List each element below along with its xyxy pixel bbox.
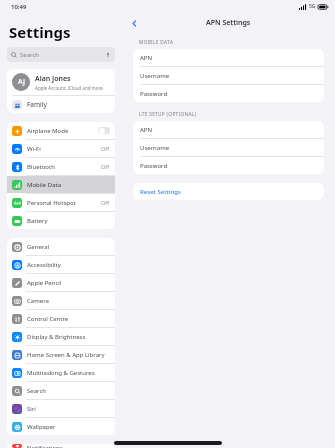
button[interactable]: Siri: [7, 400, 115, 417]
staticText: Siri: [27, 405, 36, 413]
button[interactable]: Airplane Mode: [7, 122, 115, 139]
staticText: Password: [140, 162, 168, 170]
button[interactable]: Username: [133, 139, 324, 156]
button[interactable]: Home Screen & App Library: [7, 346, 115, 363]
button[interactable]: Wi-Fi: [7, 140, 115, 157]
staticText: Apple Pencil: [27, 279, 62, 287]
staticText: Battery: [27, 217, 48, 225]
staticText: Wallpaper: [27, 423, 56, 431]
button[interactable]: Family: [7, 96, 115, 113]
staticText: AJ: [18, 77, 25, 87]
button[interactable]: Wallpaper: [7, 418, 115, 435]
button[interactable]: General: [7, 238, 115, 255]
staticText: Wi-Fi: [27, 145, 41, 153]
staticText: APN: [140, 54, 153, 62]
staticText: Username: [140, 144, 170, 152]
staticText: Search: [27, 387, 46, 395]
staticText: Camera: [27, 297, 49, 305]
button[interactable]: Apple Pencil: [7, 274, 115, 291]
staticText: Bluetooth: [27, 163, 55, 171]
staticText: Family: [27, 100, 47, 109]
button[interactable]: APN: [133, 121, 324, 138]
staticText: 5G: [309, 3, 316, 10]
button[interactable]: Bluetooth: [7, 158, 115, 175]
button[interactable]: Multitasking & Gestures: [7, 364, 115, 381]
staticText: Multitasking & Gestures: [27, 369, 95, 377]
button[interactable]: Reset Settings: [133, 183, 324, 200]
button[interactable]: Accessibility: [7, 256, 115, 273]
staticText: Off: [101, 199, 110, 206]
button[interactable]: Back: [127, 16, 141, 30]
staticText: Apple Account, iCloud and more: [35, 85, 103, 91]
staticText: Notifications: [27, 444, 63, 448]
staticText: MOBILE DATA: [139, 39, 174, 46]
button[interactable]: Personal Hotspot: [7, 194, 115, 211]
staticText: APN: [140, 126, 153, 134]
staticText: Personal Hotspot: [27, 199, 76, 207]
staticText: 10:49: [11, 3, 27, 11]
button[interactable]: Battery: [7, 212, 115, 229]
button[interactable]: Notifications: [7, 444, 115, 448]
button[interactable]: Camera: [7, 292, 115, 309]
staticText: Accessibility: [27, 261, 61, 269]
staticText: Settings: [9, 22, 71, 42]
staticText: Home Screen & App Library: [27, 351, 105, 359]
staticText: Alan Jones: [35, 74, 71, 84]
staticText: Reset Settings: [140, 188, 181, 196]
staticText: Mobile Data: [27, 181, 62, 189]
staticText: Display & Brightness: [27, 333, 86, 341]
button[interactable]: Username: [133, 67, 324, 84]
staticText: Off: [101, 163, 110, 170]
staticText: Off: [101, 145, 110, 152]
button[interactable]: Password: [133, 157, 324, 174]
staticText: APN Settings: [206, 18, 251, 28]
staticText: Password: [140, 90, 168, 98]
button[interactable]: Password: [133, 85, 324, 102]
staticText: Search: [20, 51, 39, 59]
staticText: LTE SETUP (OPTIONAL): [139, 111, 197, 118]
button[interactable]: AJ: [7, 69, 115, 95]
button[interactable]: Search: [7, 382, 115, 399]
staticText: Airplane Mode: [27, 127, 69, 135]
button[interactable]: Mobile Data: [7, 176, 115, 193]
staticText: Username: [140, 72, 170, 80]
button[interactable]: APN: [133, 49, 324, 66]
button[interactable]: Display & Brightness: [7, 328, 115, 345]
button[interactable]: Control Centre: [7, 310, 115, 327]
staticText: General: [27, 243, 50, 251]
staticText: Control Centre: [27, 315, 69, 323]
button[interactable]: Search: [7, 47, 115, 62]
